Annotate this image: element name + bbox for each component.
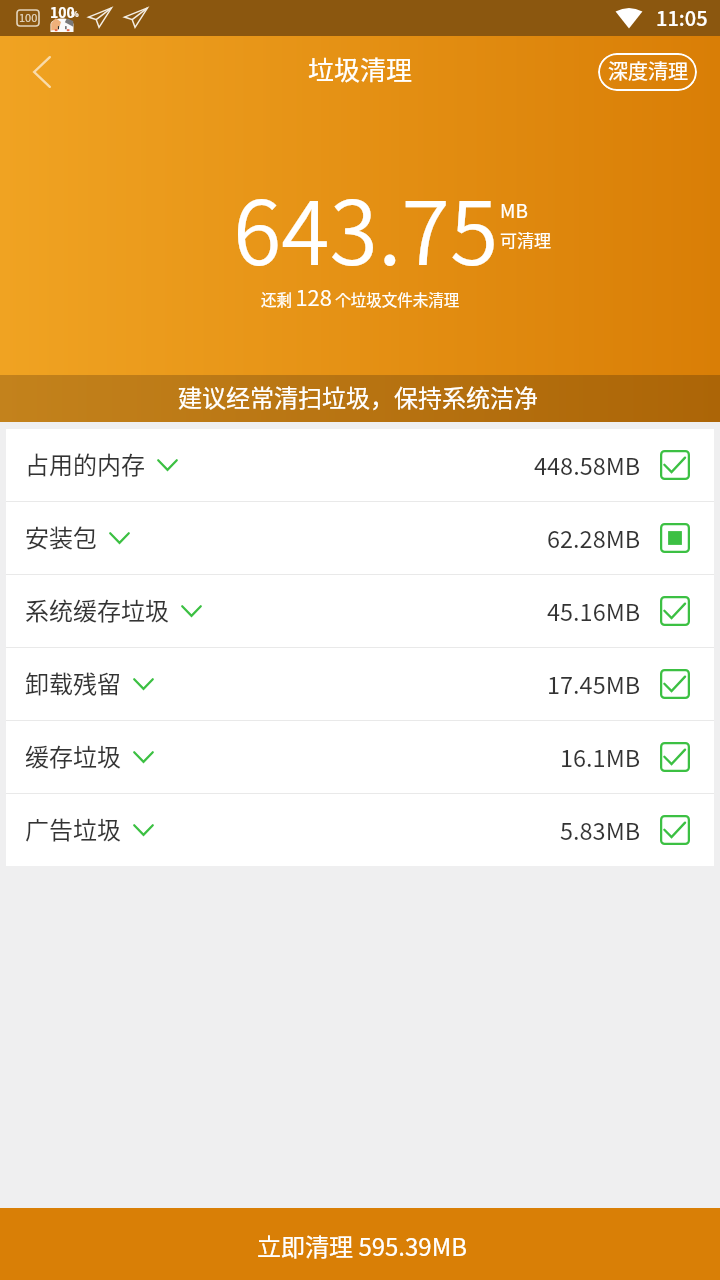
- staticText: 643.75: [233, 163, 499, 290]
- staticText: 深度清理: [608, 56, 688, 85]
- staticText: 11:05: [656, 3, 708, 32]
- button[interactable]: Select item: [660, 815, 690, 845]
- staticText: 100: [19, 9, 38, 25]
- staticText: 45.16MB: [547, 594, 641, 628]
- staticText: MB: [500, 196, 528, 224]
- button[interactable]: 广告垃圾: [6, 794, 714, 866]
- staticText: 垃圾清理: [308, 50, 413, 88]
- staticText: %: [71, 8, 79, 20]
- staticText: 16.1MB: [560, 740, 641, 774]
- button[interactable]: Select item: [660, 523, 690, 553]
- button[interactable]: 深度清理: [598, 53, 697, 91]
- button[interactable]: 缓存垃圾: [6, 721, 714, 793]
- staticText: 占用的内存: [25, 446, 145, 481]
- button[interactable]: Select item: [660, 742, 690, 772]
- button[interactable]: 安装包: [6, 502, 714, 574]
- staticText: 建议经常清扫垃圾，保持系统洁净: [178, 379, 538, 414]
- staticText: 还剩 128 个垃圾文件未清理: [261, 280, 460, 312]
- staticText: 100: [50, 2, 75, 22]
- button[interactable]: 立即清理 595.39MB: [0, 1208, 720, 1280]
- staticText: 17.45MB: [547, 667, 641, 701]
- button[interactable]: Select item: [660, 596, 690, 626]
- staticText: 缓存垃圾: [25, 738, 121, 773]
- button[interactable]: 占用的内存: [6, 429, 714, 501]
- staticText: 可清理: [500, 227, 551, 252]
- button[interactable]: Select item: [660, 450, 690, 480]
- staticText: 448.58MB: [534, 448, 641, 482]
- staticText: 系统缓存垃圾: [25, 592, 169, 627]
- button[interactable]: Select item: [660, 669, 690, 699]
- button[interactable]: 系统缓存垃圾: [6, 575, 714, 647]
- staticText: 5.83MB: [560, 813, 641, 847]
- staticText: 62.28MB: [547, 521, 641, 555]
- staticText: 安装包: [25, 519, 97, 554]
- button[interactable]: Back: [0, 36, 84, 108]
- staticText: 立即清理 595.39MB: [257, 1228, 467, 1263]
- staticText: 广告垃圾: [25, 811, 121, 846]
- staticText: 卸载残留: [25, 665, 121, 700]
- button[interactable]: 卸载残留: [6, 648, 714, 720]
